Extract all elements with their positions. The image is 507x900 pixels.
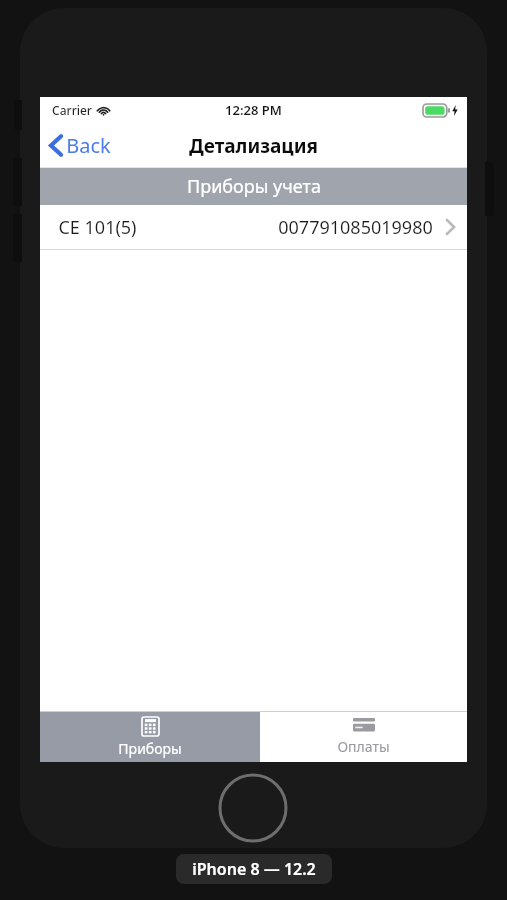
staticText: Carrier bbox=[52, 102, 92, 118]
staticText: Приборы bbox=[118, 739, 182, 758]
staticText: 007791085019980 bbox=[278, 215, 433, 240]
staticText: Back bbox=[66, 132, 111, 159]
staticText: iPhone 8 — 12.2 bbox=[192, 858, 316, 880]
staticText: Оплаты bbox=[337, 737, 390, 756]
button[interactable]: CE 101(5) bbox=[40, 205, 467, 249]
button[interactable]: Приборы bbox=[40, 712, 260, 762]
other: Home bbox=[218, 773, 288, 843]
staticText: CE 101(5) bbox=[58, 215, 137, 240]
staticText: Приборы учета bbox=[187, 174, 321, 199]
staticText: Детализация bbox=[189, 133, 318, 159]
button[interactable]: Оплаты bbox=[260, 712, 467, 762]
staticText: 12:28 PM bbox=[225, 101, 282, 119]
button[interactable]: Back bbox=[40, 126, 121, 165]
